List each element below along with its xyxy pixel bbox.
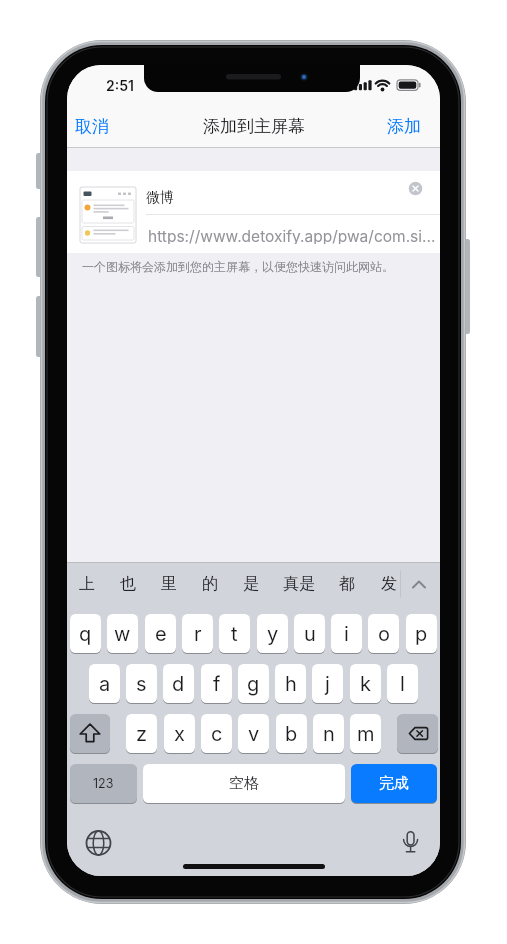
staticText: g (247, 672, 260, 696)
button[interactable]: o (368, 614, 399, 653)
button[interactable]: u (294, 614, 325, 653)
button[interactable]: 是 (231, 573, 271, 595)
staticText: 也 (120, 574, 136, 594)
staticText: 里 (161, 574, 177, 594)
button[interactable]: r (182, 614, 213, 653)
staticText: v (248, 722, 260, 746)
staticText: n (323, 722, 335, 746)
button[interactable]: w (107, 614, 138, 653)
button[interactable]: d (163, 664, 194, 703)
staticText: w (114, 622, 131, 646)
staticText: 添加到主屏幕 (203, 116, 305, 137)
staticText: a (99, 672, 111, 696)
button[interactable]: m (350, 714, 381, 753)
staticText: h (285, 672, 297, 696)
staticText: b (285, 722, 298, 746)
staticText: x (174, 722, 185, 746)
button[interactable]: f (201, 664, 232, 703)
button[interactable]: x (164, 714, 195, 753)
button[interactable]: e (145, 614, 176, 653)
staticText: c (211, 722, 223, 746)
staticText: https://www.detoxify.app/pwa/com.si... (148, 227, 436, 244)
staticText: 取消 (75, 116, 109, 137)
button[interactable] (397, 828, 425, 856)
staticText: 一个图标将会添加到您的主屏幕，以便您快速访问此网站。 (82, 259, 394, 274)
staticText: t (231, 622, 238, 646)
staticText: i (344, 622, 349, 646)
button[interactable]: 123 (70, 764, 137, 803)
staticText: 空格 (229, 774, 259, 793)
staticText: o (378, 622, 390, 646)
button[interactable]: n (313, 714, 344, 753)
button[interactable] (405, 570, 435, 598)
staticText: k (360, 672, 371, 696)
staticText: 微博 (146, 189, 174, 206)
button[interactable]: g (238, 664, 269, 703)
staticText: 是 (243, 574, 259, 594)
button[interactable]: 的 (190, 573, 230, 595)
staticText: 的 (202, 574, 218, 594)
staticText: l (400, 672, 405, 696)
staticText: 真是 (283, 574, 315, 594)
staticText: 上 (79, 574, 95, 594)
button[interactable]: 添加 (361, 115, 421, 137)
button[interactable]: t (219, 614, 250, 653)
button[interactable]: k (350, 664, 381, 703)
button[interactable]: i (331, 614, 362, 653)
button[interactable]: 完成 (351, 764, 437, 803)
staticText: 123 (93, 776, 114, 791)
staticText: q (79, 622, 92, 646)
button[interactable]: s (126, 664, 157, 703)
button[interactable] (397, 714, 438, 753)
staticText: 发 (381, 574, 397, 594)
button[interactable]: v (238, 714, 269, 753)
staticText: u (304, 622, 316, 646)
button[interactable]: q (70, 614, 101, 653)
button[interactable]: p (406, 614, 437, 653)
staticText: j (325, 672, 330, 696)
staticText: r (194, 622, 202, 646)
button[interactable]: j (312, 664, 343, 703)
button[interactable]: 取消 (75, 115, 139, 137)
button[interactable]: 里 (149, 573, 189, 595)
button[interactable] (407, 180, 425, 198)
button[interactable]: z (126, 714, 157, 753)
staticText: e (155, 622, 167, 646)
button[interactable]: 发 (369, 573, 409, 595)
staticText: f (213, 672, 221, 696)
button[interactable]: l (387, 664, 418, 703)
button[interactable]: 都 (327, 573, 367, 595)
button[interactable]: 空格 (143, 764, 345, 803)
staticText: y (267, 622, 279, 646)
staticText: p (415, 622, 428, 646)
button[interactable]: h (275, 664, 306, 703)
staticText: d (172, 672, 185, 696)
staticText: 完成 (379, 774, 409, 793)
button[interactable]: 也 (108, 573, 148, 595)
button[interactable]: 上 (67, 573, 107, 595)
staticText: s (136, 672, 147, 696)
button[interactable]: y (257, 614, 288, 653)
button[interactable] (83, 828, 111, 856)
button[interactable] (70, 714, 110, 753)
staticText: 都 (339, 574, 355, 594)
button[interactable]: b (276, 714, 307, 753)
button[interactable]: c (201, 714, 232, 753)
staticText: 2:51 (106, 77, 134, 94)
staticText: m (357, 722, 375, 746)
button[interactable]: a (89, 664, 120, 703)
staticText: z (136, 722, 148, 746)
staticText: 添加 (387, 116, 421, 137)
button[interactable]: 真是 (279, 573, 319, 595)
